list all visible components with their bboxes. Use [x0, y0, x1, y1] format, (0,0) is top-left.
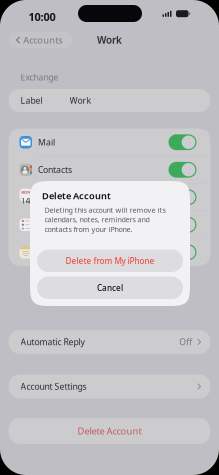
staticText: MON — [21, 190, 30, 195]
button[interactable]: Accounts — [9, 31, 72, 48]
staticText: Exchange — [20, 71, 58, 83]
button[interactable]: Automatic Reply — [8, 330, 210, 354]
staticText: Contacts — [38, 164, 72, 175]
staticText: Work — [69, 95, 91, 106]
button[interactable]: Notes — [8, 238, 210, 266]
staticText: Deleting this account will remove its ca… — [44, 205, 165, 234]
button[interactable]: Delete from My iPhone — [37, 249, 183, 272]
button[interactable]: Contacts — [8, 156, 210, 183]
staticText: Delete Account — [42, 189, 111, 202]
staticText: Reminders — [38, 219, 81, 230]
staticText: Automatic Reply — [20, 336, 84, 348]
button[interactable]: Mail — [8, 128, 210, 156]
button[interactable]: Delete Account — [8, 418, 210, 444]
staticText: Calendars — [38, 191, 78, 203]
staticText: Account Settings — [20, 381, 86, 392]
button[interactable]: Account Settings — [8, 374, 210, 398]
staticText: Mail — [38, 136, 55, 148]
button[interactable]: MON — [8, 183, 210, 211]
button[interactable]: Label — [8, 89, 210, 112]
staticText: Accounts — [23, 34, 62, 46]
button[interactable]: Reminders — [8, 211, 210, 238]
staticText: Delete from My iPhone — [65, 255, 154, 266]
staticText: Notes — [38, 246, 62, 258]
staticText: Off — [179, 336, 192, 348]
staticText: Work — [97, 33, 122, 46]
staticText: 10:00 — [28, 9, 55, 24]
staticText: Delete Account — [77, 425, 141, 437]
staticText: Label — [20, 95, 42, 106]
staticText: 14 — [21, 195, 31, 206]
button[interactable]: Cancel — [37, 276, 183, 299]
staticText: Cancel — [97, 282, 123, 293]
